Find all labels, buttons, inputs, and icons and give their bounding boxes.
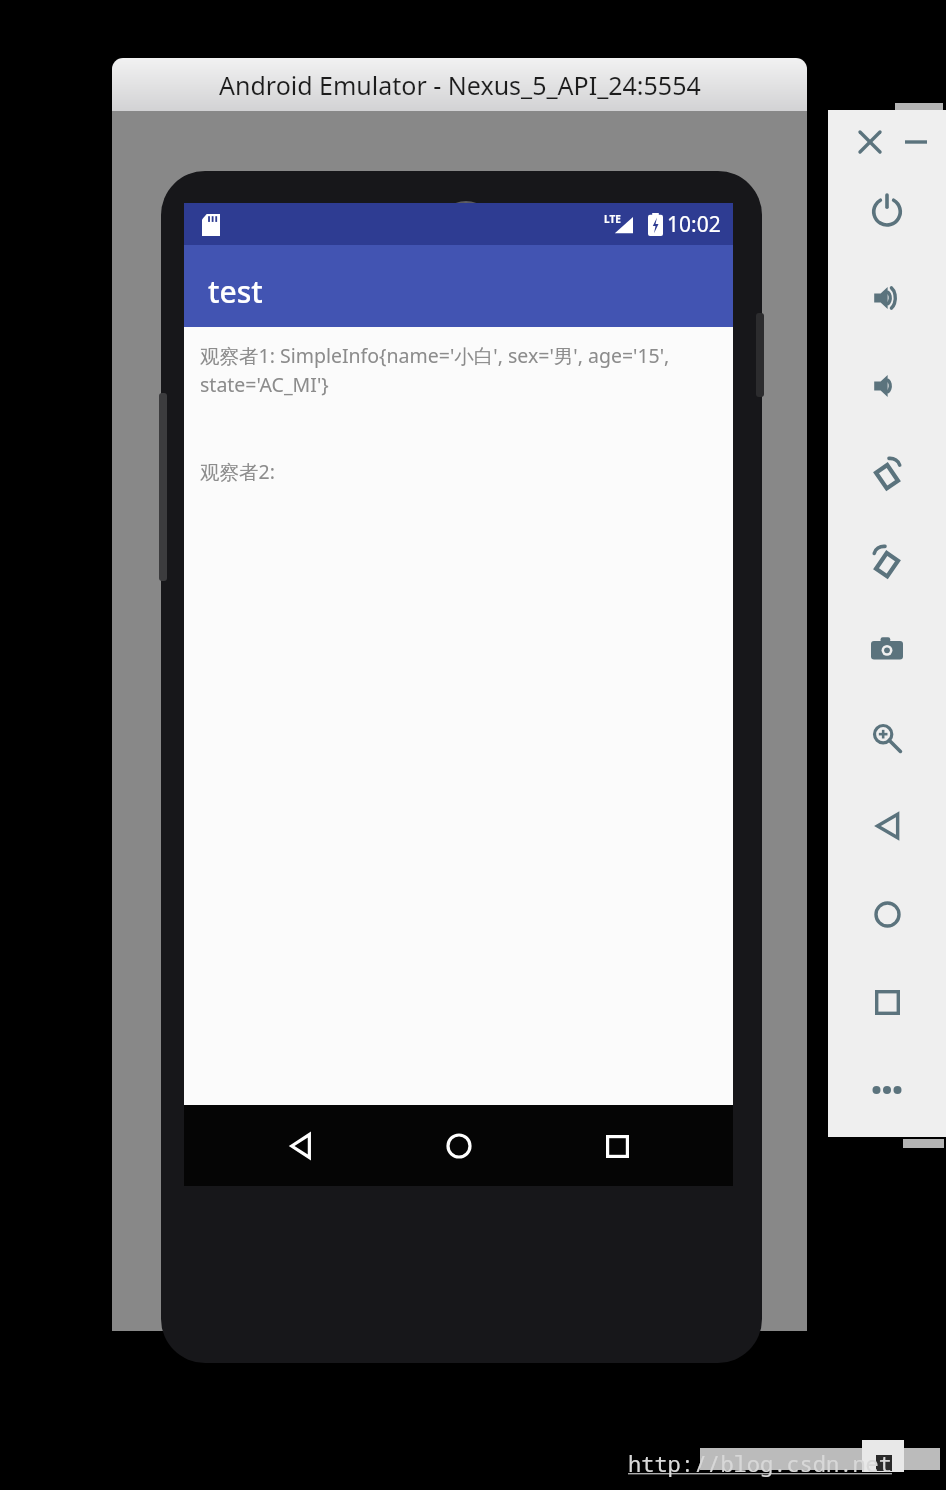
staticText: test <box>208 271 263 312</box>
button[interactable]: More <box>857 1060 917 1120</box>
staticText: http://blog.csdn.net <box>628 1448 893 1478</box>
button[interactable]: Take screenshot <box>857 620 917 680</box>
button[interactable]: Back <box>272 1118 328 1174</box>
staticText: Android Emulator - Nexus_5_API_24:5554 <box>219 68 701 102</box>
button[interactable]: Rotate left <box>857 444 917 504</box>
button[interactable]: Home <box>857 884 917 944</box>
button[interactable]: Recent apps <box>589 1118 645 1174</box>
button[interactable]: Zoom <box>857 708 917 768</box>
button[interactable]: Rotate right <box>857 532 917 592</box>
button[interactable]: Home <box>431 1118 487 1174</box>
button[interactable]: Close <box>846 118 894 166</box>
button[interactable]: Recent apps <box>857 972 917 1032</box>
button[interactable]: Volume down <box>857 356 917 416</box>
button[interactable]: Back <box>857 796 917 856</box>
staticText: LTE <box>604 212 621 226</box>
staticText: 10:02 <box>667 210 721 239</box>
staticText: 观察者1: SimpleInfo{name='小白', sex='男', age… <box>200 342 719 398</box>
button[interactable]: Minimize <box>892 118 940 166</box>
button[interactable]: Power <box>857 180 917 240</box>
staticText: 观察者2: <box>200 458 275 485</box>
button[interactable]: Volume up <box>857 268 917 328</box>
